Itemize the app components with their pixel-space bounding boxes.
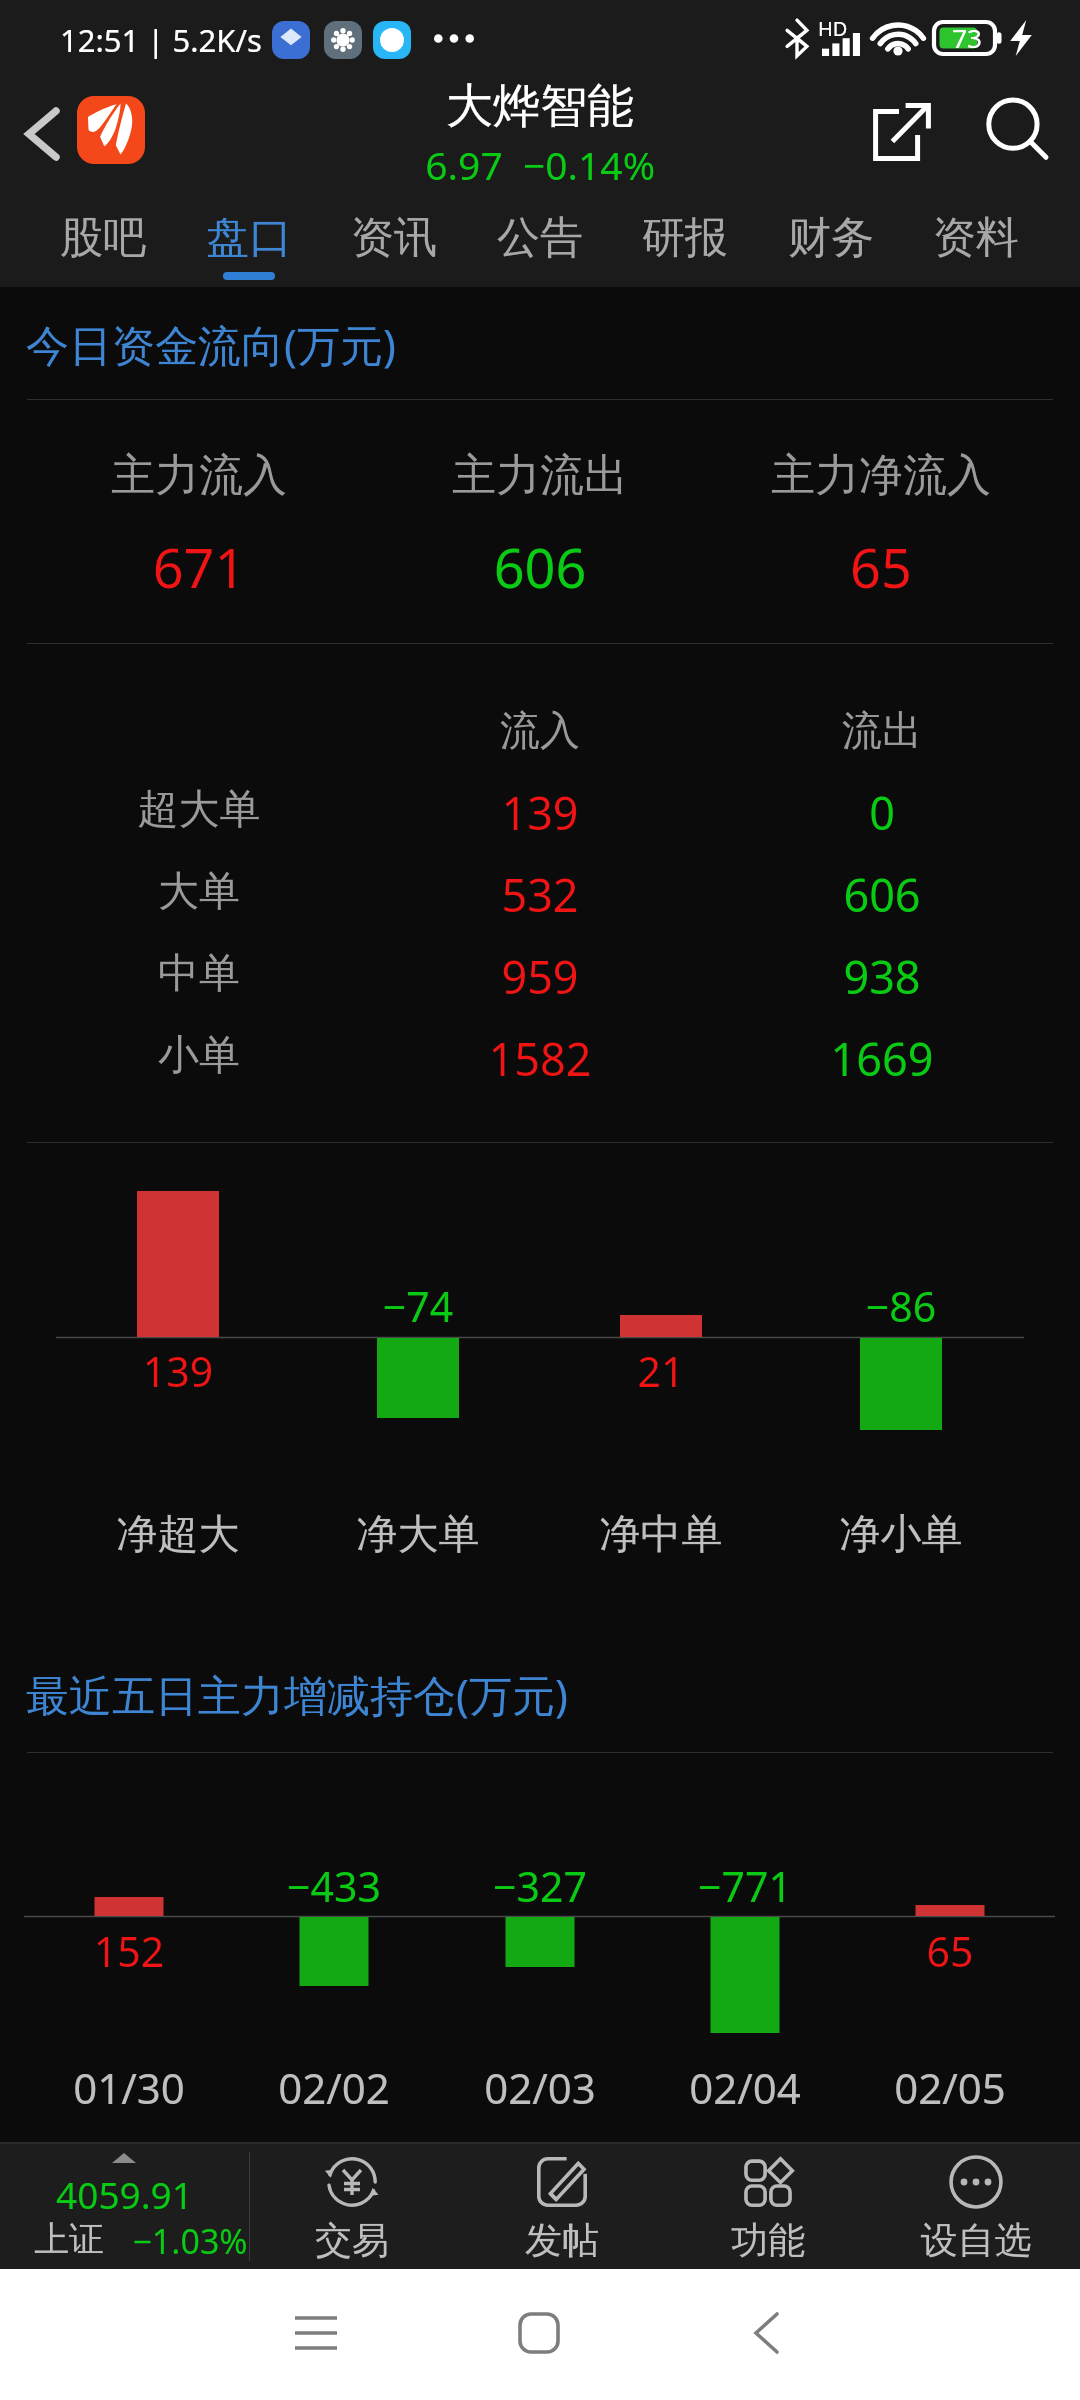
- staticText: 606: [340, 530, 740, 604]
- staticText: 研报: [613, 211, 757, 265]
- staticText: −771: [545, 1858, 945, 1914]
- staticText: 设自选: [872, 2217, 1080, 2264]
- button[interactable]: 交易: [248, 2144, 456, 2269]
- staticText: 152: [0, 1923, 329, 1979]
- button[interactable]: 发帖: [458, 2144, 666, 2269]
- staticText: 65: [681, 530, 1080, 604]
- staticText: 资料: [904, 211, 1048, 265]
- staticText: 功能: [664, 2217, 872, 2264]
- staticText: −86: [701, 1278, 1080, 1334]
- staticText: 532: [340, 864, 740, 925]
- button[interactable]: Home: [503, 2297, 575, 2369]
- staticText: 606: [682, 864, 1080, 925]
- staticText: 交易: [248, 2217, 456, 2264]
- staticText: 12:51 | 5.2K/s: [60, 19, 262, 61]
- staticText: 净中单: [461, 1509, 861, 1561]
- staticText: 小单: [0, 1030, 399, 1082]
- staticText: 主力流出: [340, 448, 740, 503]
- staticText: 02/03: [340, 2059, 740, 2116]
- staticText: 主力净流入: [681, 448, 1080, 503]
- staticText: 02/05: [750, 2059, 1080, 2116]
- staticText: 今日资金流向(万元): [26, 315, 396, 374]
- staticText: 21: [461, 1343, 861, 1399]
- staticText: 02/02: [134, 2059, 534, 2116]
- staticText: 0: [682, 782, 1080, 843]
- staticText: 流入: [340, 705, 740, 755]
- staticText: 上证: [33, 2217, 105, 2261]
- staticText: 流出: [682, 705, 1080, 755]
- staticText: 65: [750, 1923, 1080, 1979]
- button[interactable]: 资讯: [322, 193, 466, 287]
- staticText: 1582: [340, 1028, 740, 1089]
- button[interactable]: 设自选: [872, 2144, 1080, 2269]
- button[interactable]: 财务: [759, 193, 903, 287]
- button[interactable]: 公告: [468, 193, 612, 287]
- button[interactable]: 盘口: [177, 193, 321, 287]
- button[interactable]: Back: [2, 86, 82, 182]
- staticText: 盘口: [177, 211, 321, 265]
- staticText: 139: [0, 1343, 378, 1399]
- button[interactable]: Menu: [280, 2297, 352, 2369]
- staticText: −0.14%: [389, 138, 789, 191]
- staticText: 中单: [0, 948, 399, 1000]
- staticText: 139: [340, 782, 740, 843]
- staticText: 股吧: [31, 211, 175, 265]
- staticText: 1669: [682, 1028, 1080, 1089]
- button[interactable]: 研报: [613, 193, 757, 287]
- staticText: 4059.91: [0, 2169, 249, 2219]
- staticText: 最近五日主力增减持仓(万元): [26, 1665, 568, 1724]
- staticText: 73: [767, 20, 1080, 55]
- staticText: 公告: [468, 211, 612, 265]
- staticText: 01/30: [0, 2059, 329, 2116]
- staticText: 超大单: [0, 784, 399, 836]
- staticText: 02/04: [545, 2059, 945, 2116]
- staticText: 净小单: [701, 1509, 1080, 1561]
- staticText: 财务: [759, 211, 903, 265]
- button[interactable]: App home: [77, 96, 145, 164]
- button[interactable]: Search: [970, 86, 1062, 178]
- staticText: 959: [340, 946, 740, 1007]
- button[interactable]: Back: [730, 2297, 802, 2369]
- staticText: 净超大: [0, 1509, 378, 1561]
- button[interactable]: 股吧: [31, 193, 175, 287]
- staticText: −433: [134, 1858, 534, 1914]
- staticText: 6.97: [264, 138, 664, 191]
- staticText: 大烨智能: [340, 77, 740, 136]
- staticText: 938: [682, 946, 1080, 1007]
- staticText: 发帖: [458, 2217, 666, 2264]
- staticText: −1.03%: [130, 2218, 250, 2264]
- button[interactable]: 资料: [904, 193, 1048, 287]
- staticText: 净大单: [218, 1509, 618, 1561]
- staticText: 主力流入: [0, 448, 399, 503]
- staticText: −327: [340, 1858, 740, 1914]
- staticText: 大单: [0, 866, 399, 918]
- staticText: 671: [0, 530, 399, 604]
- staticText: HD: [818, 15, 848, 42]
- staticText: −74: [218, 1278, 618, 1334]
- staticText: 资讯: [322, 211, 466, 265]
- button[interactable]: 功能: [664, 2144, 872, 2269]
- button[interactable]: 4059.91: [0, 2144, 249, 2269]
- button[interactable]: Share: [856, 86, 948, 178]
